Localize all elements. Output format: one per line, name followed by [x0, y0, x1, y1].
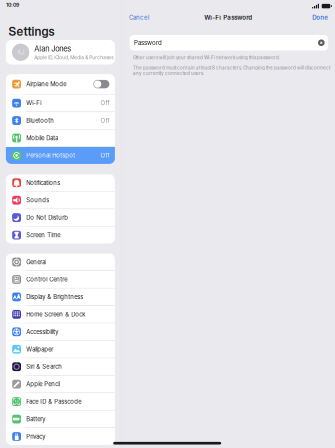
staticText: Off [100, 99, 109, 107]
staticText: Apple ID, iCloud, Media & Purchases [34, 55, 113, 60]
button[interactable]: Clear password [318, 39, 325, 46]
button[interactable]: Do Not Disturb [6, 209, 115, 226]
staticText: Control Centre [26, 276, 67, 283]
button[interactable]: Cancel [129, 12, 149, 23]
staticText: Bluetooth [26, 117, 54, 124]
staticText: Sounds [26, 197, 49, 204]
button[interactable]: Done [312, 12, 328, 23]
button[interactable]: Wi-Fi [6, 95, 115, 112]
staticText: General [26, 258, 46, 266]
button[interactable]: Battery [6, 411, 115, 427]
button[interactable]: Wallpaper [6, 341, 115, 358]
staticText: Password [134, 39, 162, 46]
staticText: Wallpaper [26, 346, 53, 353]
staticText: Other users will join your shared Wi-Fi … [133, 55, 280, 60]
staticText: AJ [17, 49, 24, 56]
button[interactable]: Personal Hotspot [6, 147, 115, 164]
staticText: Cancel [129, 14, 149, 21]
staticText: Alan Jones [34, 44, 71, 53]
staticText: Do Not Disturb [26, 214, 68, 221]
button[interactable]: Airplane Mode [6, 74, 115, 94]
button[interactable]: Accessibility [6, 323, 115, 340]
staticText: Mobile Data [26, 134, 58, 142]
staticText: Accessibility [26, 328, 58, 335]
button[interactable]: Privacy [6, 428, 115, 445]
staticText: Off [100, 117, 109, 124]
staticText: Apple Pencil [26, 381, 60, 388]
staticText: 10:09 [6, 2, 19, 8]
button[interactable]: Display & Brightness [6, 288, 115, 305]
button[interactable]: Siri & Search [6, 358, 115, 375]
button[interactable]: AJ [6, 40, 115, 64]
button[interactable]: General [6, 254, 115, 270]
staticText: Siri & Search [26, 363, 62, 370]
staticText: The password must contain at least 8 cha… [133, 65, 330, 76]
button[interactable]: Bluetooth [6, 112, 115, 129]
button[interactable]: Control Centre [6, 271, 115, 288]
button[interactable]: Face ID & Passcode [6, 393, 115, 410]
staticText: Wi-Fi [26, 99, 41, 107]
staticText: Battery [26, 415, 45, 423]
staticText: Personal Hotspot [26, 152, 75, 159]
staticText: Display & Brightness [26, 293, 83, 300]
staticText: Wi-Fi Password [204, 14, 252, 21]
staticText: Off [100, 152, 109, 159]
staticText: Notifications [26, 179, 60, 186]
staticText: Face ID & Passcode [26, 398, 81, 405]
button[interactable]: Apple Pencil [6, 376, 115, 393]
button[interactable]: Notifications [6, 174, 115, 191]
staticText: Screen Time [26, 231, 60, 239]
staticText: Home Screen & Dock [26, 311, 85, 318]
button[interactable]: Mobile Data [6, 130, 115, 146]
button[interactable]: Sounds [6, 192, 115, 209]
staticText: Settings [8, 24, 54, 39]
staticText: Done [312, 14, 328, 21]
staticText: Privacy [26, 433, 45, 440]
button[interactable]: Home Screen & Dock [6, 306, 115, 323]
button[interactable]: Screen Time [6, 227, 115, 244]
staticText: Airplane Mode [26, 80, 66, 88]
